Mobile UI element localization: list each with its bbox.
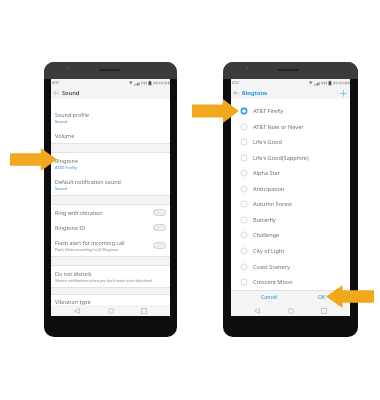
staticText: Life's Good(Sapphire) xyxy=(253,154,309,162)
staticText: AT&T Firefly xyxy=(55,165,77,170)
button[interactable]: City of Light xyxy=(231,243,350,259)
button[interactable]: Do not disturb xyxy=(51,266,170,287)
staticText: Crescent Moon xyxy=(253,278,293,286)
staticText: Cancel xyxy=(261,293,278,300)
staticText: Flash alert for incoming call xyxy=(55,239,125,246)
staticText: Alpha Star xyxy=(253,169,281,177)
staticText: Anticipation xyxy=(253,185,285,193)
button[interactable]: Autumn Forest xyxy=(231,196,350,212)
button[interactable]: Challenge xyxy=(231,227,350,243)
button[interactable]: Volume xyxy=(51,128,170,143)
button[interactable]: Back xyxy=(52,89,60,97)
staticText: Challenge xyxy=(253,231,280,239)
staticText: Sound xyxy=(62,89,80,97)
staticText: Ringtone xyxy=(55,157,78,164)
button[interactable]: Back xyxy=(232,89,240,97)
button[interactable]: Anticipation xyxy=(231,181,350,197)
staticText: Flash blinks according to LG Ringtone xyxy=(55,247,119,252)
button[interactable]: AT&T Firefly xyxy=(231,103,350,119)
button[interactable]: Recents xyxy=(317,305,331,316)
staticText: Vibration type xyxy=(55,298,91,305)
button[interactable]: Crescent Moon xyxy=(231,274,350,290)
button[interactable]: Coast Scenery xyxy=(231,259,350,275)
staticText: Autumn Forest xyxy=(253,200,292,208)
button[interactable]: Sound profile xyxy=(51,107,170,128)
staticText: Volume xyxy=(55,132,75,139)
staticText: Default notification sound xyxy=(55,178,121,185)
staticText: Do not disturb xyxy=(55,270,92,277)
button[interactable]: Add ringtone xyxy=(339,89,348,98)
button[interactable]: Back xyxy=(250,305,264,316)
button[interactable]: Home xyxy=(104,305,118,316)
staticText: Coast Scenery xyxy=(253,263,290,271)
button[interactable]: Ringtone xyxy=(51,153,170,174)
button[interactable]: Back xyxy=(51,87,170,99)
staticText: Ringtone ID xyxy=(55,224,86,231)
staticText: Sound xyxy=(55,119,68,124)
staticText: AT&T Firefly xyxy=(253,107,284,115)
staticText: AT&T xyxy=(52,81,60,85)
staticText: Butterfly xyxy=(253,216,276,224)
button[interactable]: Back xyxy=(231,87,350,99)
button[interactable]: AT&T Now or Never xyxy=(231,119,350,135)
button[interactable]: Life's Good(Sapphire) xyxy=(231,150,350,166)
button[interactable]: Alpha Star xyxy=(231,165,350,181)
button[interactable]: Recents xyxy=(137,305,151,316)
staticText: Silence notifications when you don't wan… xyxy=(55,278,152,283)
staticText: Ringtone xyxy=(242,89,268,97)
button[interactable]: Flash alert for incoming call xyxy=(51,235,170,256)
button[interactable]: Default notification sound xyxy=(51,174,170,195)
staticText: Sound xyxy=(55,186,68,191)
button[interactable]: Vibration type xyxy=(51,295,170,305)
staticText: Sound profile xyxy=(55,111,89,118)
staticText: City of Light xyxy=(253,247,285,255)
button[interactable]: Ring with vibration xyxy=(51,205,170,220)
button[interactable]: Butterfly xyxy=(231,212,350,228)
button[interactable]: Cancel xyxy=(243,292,295,300)
button[interactable]: Ringtone ID xyxy=(51,220,170,235)
staticText: Life's Good xyxy=(253,138,282,146)
staticText: AT&T Now or Never xyxy=(253,123,304,131)
button[interactable]: Life's Good xyxy=(231,134,350,150)
button[interactable]: Back xyxy=(70,305,84,316)
staticText: AT&T xyxy=(232,81,240,85)
button[interactable]: Home xyxy=(284,305,298,316)
staticText: Ring with vibration xyxy=(55,209,103,216)
staticText: OK xyxy=(318,293,326,300)
button[interactable]: OK xyxy=(295,292,348,300)
